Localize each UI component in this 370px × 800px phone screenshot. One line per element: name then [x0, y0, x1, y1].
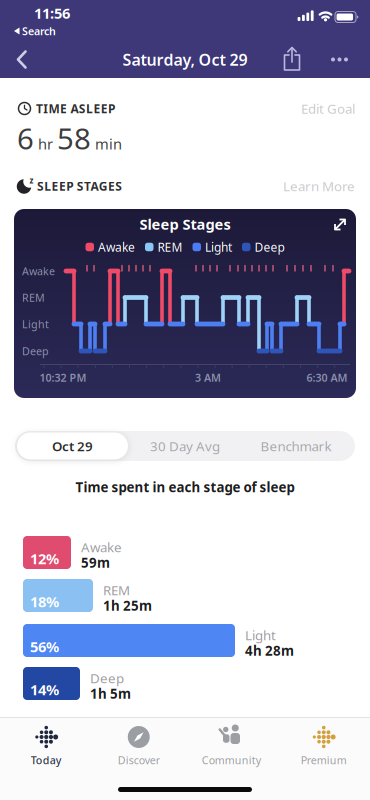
staticText: 6	[17, 118, 34, 157]
button[interactable]: Edit Goal	[255, 93, 355, 123]
staticText: 10:32 PM	[39, 370, 86, 385]
staticText: Today	[31, 753, 62, 767]
staticText: min	[95, 134, 122, 153]
staticText: Light	[245, 626, 276, 644]
staticText: Sleep Stages	[139, 214, 230, 234]
staticText: REM	[22, 290, 45, 305]
staticText: 4h 28m	[245, 642, 294, 659]
button[interactable]	[277, 45, 307, 75]
staticText: Community	[202, 753, 261, 767]
button[interactable]: 30 Day Avg	[130, 431, 240, 461]
staticText: Premium	[301, 753, 347, 767]
button[interactable]	[0, 38, 44, 80]
button[interactable]: Benchmark	[241, 431, 351, 461]
button[interactable]: Today	[0, 717, 92, 773]
staticText: Awake	[81, 538, 122, 556]
staticText: Awake	[98, 239, 135, 255]
staticText: 30 Day Avg	[150, 437, 220, 455]
staticText: Edit Goal	[301, 100, 355, 117]
button[interactable]: Community	[185, 717, 277, 773]
staticText: Search	[22, 24, 56, 38]
staticText: Deep	[22, 344, 49, 358]
staticText: Light	[205, 239, 232, 255]
staticText: 3 AM	[195, 370, 221, 385]
staticText: Awake	[22, 264, 55, 278]
staticText: z	[29, 175, 33, 186]
staticText: Time spent in each stage of sleep	[75, 478, 294, 496]
staticText: Benchmark	[260, 437, 331, 455]
staticText: hr	[38, 134, 53, 153]
staticText: Deep	[254, 239, 284, 255]
staticText: 18%	[30, 592, 59, 611]
button[interactable]	[329, 213, 351, 235]
button[interactable]: Learn More	[245, 171, 355, 201]
staticText: TIME ASLEEP	[36, 100, 115, 116]
button[interactable]: Discover	[93, 717, 185, 773]
staticText: Saturday, Oct 29	[122, 49, 247, 70]
staticText: REM	[103, 581, 130, 599]
staticText: REM	[157, 239, 182, 255]
staticText: 56%	[30, 637, 59, 656]
staticText: 58	[57, 118, 91, 157]
staticText: Deep	[90, 669, 124, 687]
staticText: Oct 29	[52, 437, 93, 455]
staticText: 14%	[30, 680, 59, 699]
button[interactable]: Premium	[278, 717, 370, 773]
staticText: Learn More	[283, 177, 355, 195]
staticText: 59m	[81, 554, 110, 571]
staticText: 1h 25m	[103, 597, 152, 614]
staticText: 6:30 AM	[306, 370, 347, 385]
staticText: 11:56	[34, 3, 70, 23]
staticText: SLEEP STAGES	[37, 178, 122, 194]
staticText: 12%	[30, 549, 59, 568]
staticText: Light	[22, 317, 49, 331]
staticText: 1h 5m	[90, 685, 131, 702]
button[interactable]	[318, 44, 362, 74]
button[interactable]: Oct 29	[17, 431, 128, 461]
staticText: Discover	[118, 753, 160, 767]
